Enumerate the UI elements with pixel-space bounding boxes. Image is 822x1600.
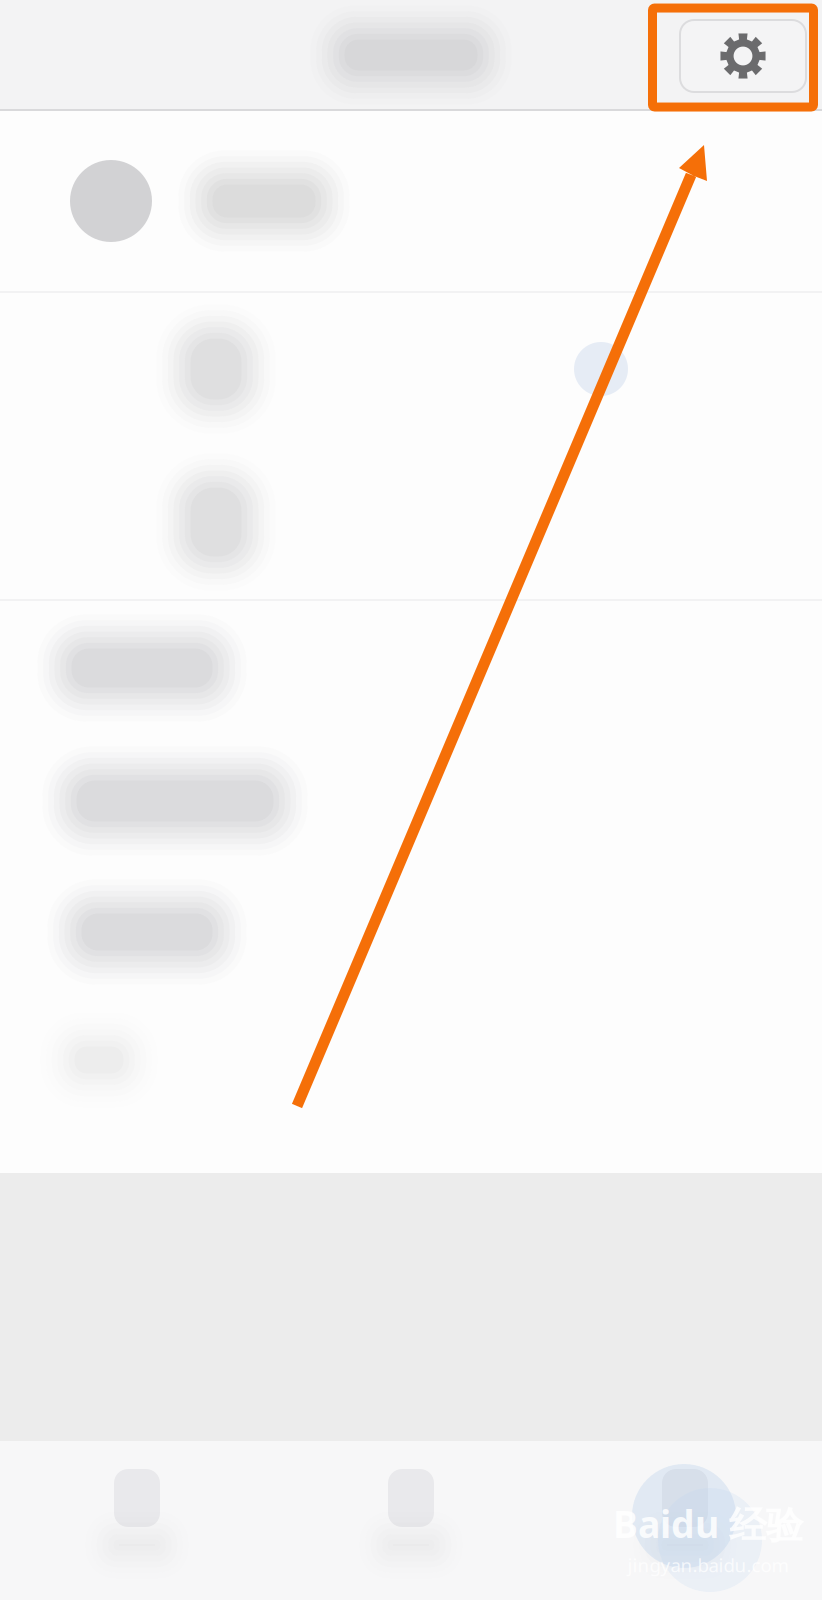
button[interactable]: Discover: [274, 1441, 548, 1600]
button[interactable]: [0, 997, 822, 1123]
button[interactable]: [0, 445, 822, 599]
button[interactable]: Settings: [680, 20, 806, 92]
button[interactable]: [0, 111, 822, 291]
staticText: Baidu 经验: [613, 1499, 803, 1548]
button[interactable]: Profile: [548, 1441, 822, 1600]
button[interactable]: [0, 293, 822, 445]
button[interactable]: Home: [0, 1441, 274, 1600]
button[interactable]: [0, 735, 822, 867]
button[interactable]: [0, 867, 822, 997]
button[interactable]: [0, 601, 822, 735]
staticText: jingyan.baidu.com: [627, 1552, 788, 1577]
